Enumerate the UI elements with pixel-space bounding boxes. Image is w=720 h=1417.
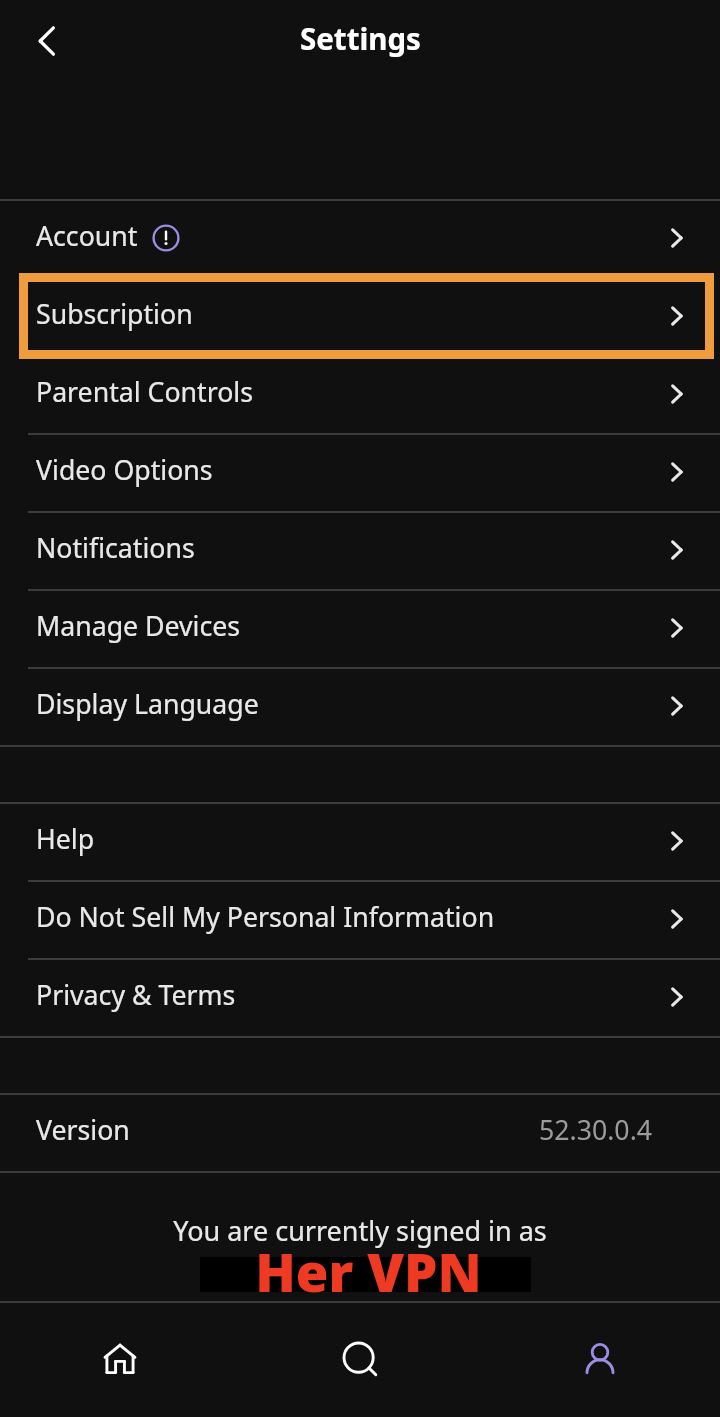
button[interactable]: Account (0, 199, 720, 277)
button[interactable]: Privacy & Terms (0, 958, 720, 1036)
staticText: Version (36, 1111, 130, 1147)
button[interactable]: Video Options (0, 433, 720, 511)
staticText: Do Not Sell My Personal Information (36, 898, 495, 934)
staticText: Parental Controls (36, 373, 254, 409)
staticText: You are currently signed in as (173, 1212, 547, 1249)
button[interactable]: Do Not Sell My Personal Information (0, 880, 720, 958)
button[interactable]: Home (0, 1301, 240, 1417)
staticText: Privacy & Terms (36, 976, 236, 1012)
staticText: Her VPN (255, 1235, 482, 1307)
button[interactable]: Help (0, 802, 720, 880)
staticText: Notifications (36, 529, 195, 565)
staticText: Subscription (36, 295, 193, 331)
staticText: Video Options (36, 451, 213, 487)
button[interactable]: Notifications (0, 511, 720, 589)
staticText: Help (36, 820, 95, 856)
button[interactable]: Back (18, 12, 76, 70)
staticText: Manage Devices (36, 607, 241, 643)
button[interactable]: Parental Controls (0, 355, 720, 433)
staticText: 52.30.0.4 (539, 1111, 653, 1147)
button[interactable]: Profile (480, 1301, 720, 1417)
button[interactable]: Display Language (0, 667, 720, 745)
staticText: Account (36, 217, 138, 253)
button[interactable]: Subscription (0, 277, 720, 355)
button[interactable]: Search (240, 1301, 480, 1417)
staticText: Display Language (36, 685, 259, 721)
button[interactable]: Manage Devices (0, 589, 720, 667)
button[interactable]: Version (0, 1093, 720, 1171)
staticText: Settings (300, 18, 421, 58)
